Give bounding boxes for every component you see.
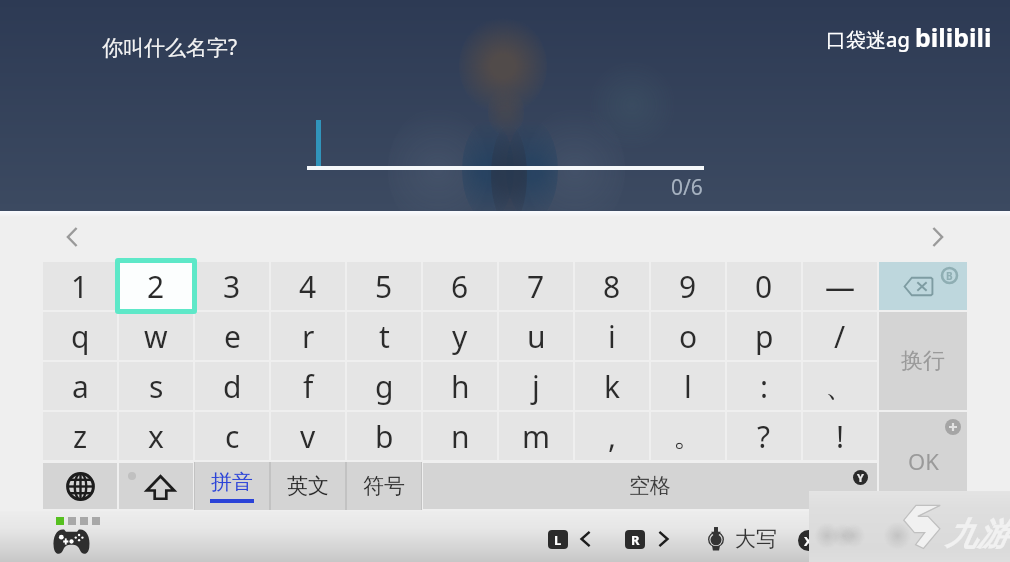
- button[interactable]: 7: [499, 262, 573, 310]
- staticText: X: [804, 532, 813, 550]
- staticText: h: [451, 366, 470, 407]
- button[interactable]: Language: [43, 463, 117, 509]
- staticText: b: [375, 416, 394, 457]
- staticText: a: [72, 366, 89, 407]
- button[interactable]: i: [575, 312, 649, 360]
- button[interactable]: 4: [271, 262, 345, 310]
- button[interactable]: 换行: [879, 312, 967, 410]
- button[interactable]: s: [119, 362, 193, 410]
- staticText: :: [760, 366, 769, 407]
- button[interactable]: c: [195, 412, 269, 460]
- button[interactable]: Backspace: [879, 262, 967, 310]
- staticText: 大写: [735, 526, 777, 552]
- staticText: Y: [857, 470, 864, 485]
- staticText: ?: [757, 416, 771, 457]
- button[interactable]: 9: [651, 262, 725, 310]
- button[interactable]: 拼音: [194, 462, 270, 510]
- staticText: 拼音: [211, 469, 253, 495]
- button[interactable]: o: [651, 312, 725, 360]
- button[interactable]: d: [195, 362, 269, 410]
- button[interactable]: k: [575, 362, 649, 410]
- button[interactable]: 2: [120, 263, 192, 309]
- staticText: 5: [375, 266, 393, 307]
- button[interactable]: 英文: [270, 462, 346, 510]
- button[interactable]: z: [43, 412, 117, 460]
- button[interactable]: 3: [195, 262, 269, 310]
- button[interactable]: 大写: [705, 526, 777, 552]
- button[interactable]: w: [119, 312, 193, 360]
- staticText: z: [73, 416, 88, 457]
- button[interactable]: L: [548, 529, 595, 549]
- staticText: 英文: [287, 473, 329, 499]
- staticText: R: [631, 531, 640, 549]
- button[interactable]: 0: [727, 262, 801, 310]
- staticText: q: [71, 316, 90, 357]
- button[interactable]: e: [195, 312, 269, 360]
- staticText: 空格: [629, 473, 671, 499]
- button[interactable]: 符号: [346, 462, 422, 510]
- button[interactable]: n: [423, 412, 497, 460]
- button[interactable]: 。: [651, 412, 725, 460]
- button[interactable]: —: [803, 262, 877, 310]
- button[interactable]: a: [43, 362, 117, 410]
- button[interactable]: y: [423, 312, 497, 360]
- staticText: ,: [608, 416, 617, 457]
- staticText: n: [451, 416, 470, 457]
- button[interactable]: 8: [575, 262, 649, 310]
- button[interactable]: x: [119, 412, 193, 460]
- button[interactable]: !: [803, 412, 877, 460]
- button[interactable]: 5: [347, 262, 421, 310]
- button[interactable]: 6: [423, 262, 497, 310]
- staticText: u: [527, 316, 546, 357]
- button[interactable]: j: [499, 362, 573, 410]
- button[interactable]: q: [43, 312, 117, 360]
- button[interactable]: h: [423, 362, 497, 410]
- staticText: e: [224, 316, 241, 357]
- staticText: 2: [147, 266, 165, 307]
- button[interactable]: OK: [879, 412, 967, 509]
- staticText: 你叫什么名字?: [102, 33, 238, 62]
- staticText: d: [223, 366, 242, 407]
- button[interactable]: p: [727, 312, 801, 360]
- staticText: k: [604, 366, 621, 407]
- staticText: 7: [527, 266, 545, 307]
- button[interactable]: f: [271, 362, 345, 410]
- button[interactable]: b: [347, 412, 421, 460]
- staticText: f: [303, 366, 314, 407]
- button[interactable]: u: [499, 312, 573, 360]
- button[interactable]: 空格: [423, 463, 877, 509]
- button[interactable]: /: [803, 312, 877, 360]
- button[interactable]: ?: [727, 412, 801, 460]
- staticText: 0/6: [671, 173, 703, 202]
- staticText: m: [522, 416, 551, 457]
- button[interactable]: g: [347, 362, 421, 410]
- button[interactable]: X: [798, 530, 819, 551]
- button[interactable]: Previous page: [58, 222, 88, 252]
- staticText: bilibili: [915, 20, 992, 54]
- button[interactable]: Shift: [119, 463, 193, 509]
- button[interactable]: m: [499, 412, 573, 460]
- staticText: o: [679, 316, 698, 357]
- button[interactable]: :: [727, 362, 801, 410]
- staticText: 符号: [363, 473, 405, 499]
- staticText: v: [300, 416, 316, 457]
- staticText: r: [302, 316, 315, 357]
- button[interactable]: l: [651, 362, 725, 410]
- button[interactable]: 1: [43, 262, 117, 310]
- staticText: 口袋迷ag: [826, 26, 910, 53]
- button[interactable]: Next page: [922, 222, 952, 252]
- staticText: 8: [603, 266, 621, 307]
- staticText: i: [608, 316, 616, 357]
- button[interactable]: r: [271, 312, 345, 360]
- button[interactable]: v: [271, 412, 345, 460]
- staticText: !: [836, 416, 845, 457]
- staticText: j: [532, 366, 540, 407]
- staticText: 4: [299, 266, 317, 307]
- button[interactable]: ,: [575, 412, 649, 460]
- staticText: 9: [679, 266, 697, 307]
- button[interactable]: 、: [803, 362, 877, 410]
- button[interactable]: R: [625, 529, 672, 549]
- staticText: 、: [825, 367, 855, 405]
- staticText: /: [834, 316, 846, 357]
- button[interactable]: t: [347, 312, 421, 360]
